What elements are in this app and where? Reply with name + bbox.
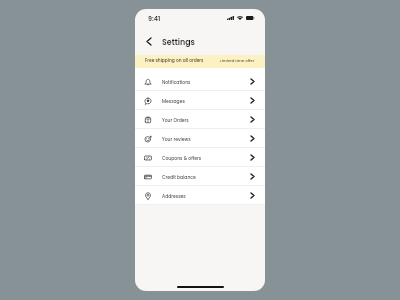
staticText: Your Orders bbox=[162, 117, 189, 123]
staticText: Notifications bbox=[162, 79, 191, 85]
staticText: Coupons & offers bbox=[162, 155, 202, 161]
button[interactable]: Your Orders bbox=[135, 110, 265, 128]
staticText: Limited time offer bbox=[220, 58, 255, 63]
staticText: Messages bbox=[162, 98, 185, 104]
staticText: Addresses bbox=[162, 193, 186, 199]
button[interactable]: Notifications bbox=[135, 72, 265, 90]
staticText: Settings bbox=[162, 37, 195, 48]
staticText: Credit balance bbox=[162, 174, 196, 180]
button[interactable]: Addresses bbox=[135, 186, 265, 204]
button[interactable]: Messages bbox=[135, 91, 265, 109]
button[interactable]: Your reviews bbox=[135, 129, 265, 147]
staticText: Free shipping on all orders bbox=[145, 57, 204, 63]
button[interactable]: Coupons & offers bbox=[135, 148, 265, 166]
staticText: 9:41 bbox=[148, 14, 161, 23]
button[interactable]: Credit balance bbox=[135, 167, 265, 185]
button[interactable]: Back bbox=[141, 33, 157, 49]
staticText: Your reviews bbox=[162, 136, 191, 142]
